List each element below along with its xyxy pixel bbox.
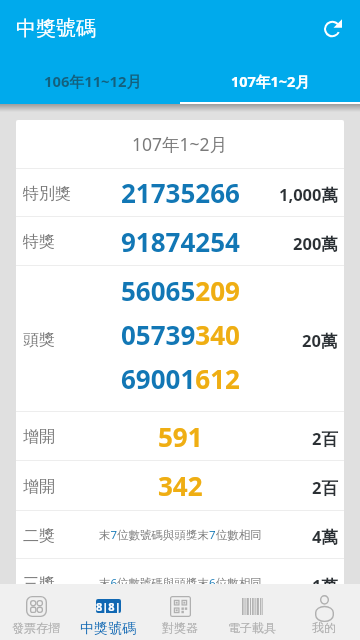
- staticText: 1,000萬: [279, 183, 338, 206]
- staticText: 對獎器: [162, 620, 198, 635]
- staticText: 591: [158, 419, 203, 454]
- button[interactable]: Refresh: [312, 5, 360, 53]
- staticText: 特別獎: [23, 184, 71, 204]
- staticText: 末7位數號碼與頭獎末7位數相同: [99, 527, 262, 543]
- staticText: 20萬: [302, 329, 338, 352]
- button[interactable]: 電子載具: [216, 584, 288, 640]
- staticText: 2百: [312, 476, 338, 499]
- staticText: 電子載具: [228, 620, 276, 635]
- staticText: 1萬: [312, 574, 338, 597]
- button[interactable]: 對獎器: [144, 584, 216, 640]
- staticText: 91874254: [121, 224, 240, 259]
- button[interactable]: 106年11~12月: [0, 57, 180, 104]
- staticText: 4萬: [312, 525, 338, 548]
- staticText: 05739340: [121, 317, 240, 352]
- staticText: 末6位數號碼與頭獎末6位數相同: [99, 575, 262, 591]
- staticText: 56065209: [121, 273, 240, 308]
- staticText: 三獎: [23, 574, 55, 594]
- staticText: 342: [158, 468, 203, 503]
- button[interactable]: 我的: [288, 584, 360, 640]
- staticText: 8|8|8: [96, 599, 121, 613]
- staticText: 69001612: [121, 361, 240, 396]
- staticText: 106年11~12月: [44, 71, 142, 91]
- staticText: 中獎號碼: [80, 620, 136, 638]
- staticText: 200萬: [293, 232, 338, 255]
- button[interactable]: 發票存摺: [0, 584, 72, 640]
- staticText: 我的: [312, 620, 336, 635]
- button[interactable]: 107年1~2月: [180, 57, 360, 104]
- staticText: 107年1~2月: [132, 132, 228, 156]
- staticText: 中獎號碼: [16, 16, 96, 41]
- staticText: 增開: [23, 427, 55, 447]
- button[interactable]: 8|8|8: [72, 584, 144, 640]
- staticText: 特獎: [23, 232, 55, 252]
- staticText: 21735266: [121, 175, 240, 210]
- staticText: 發票存摺: [12, 620, 60, 635]
- staticText: 2百: [312, 427, 338, 450]
- staticText: 二獎: [23, 526, 55, 546]
- staticText: 107年1~2月: [231, 71, 310, 91]
- staticText: 增開: [23, 477, 55, 497]
- staticText: 頭獎: [23, 330, 55, 350]
